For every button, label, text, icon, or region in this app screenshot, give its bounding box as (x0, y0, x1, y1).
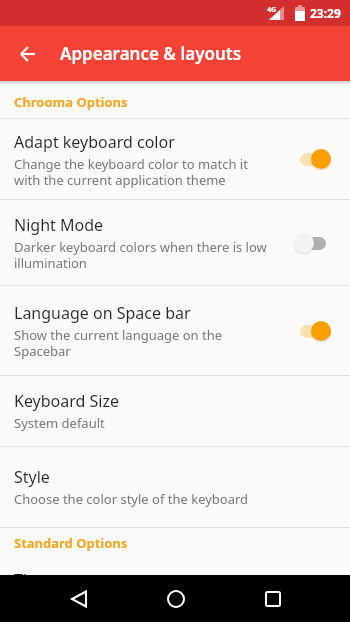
staticText: Change the keyboard color to match it wi… (14, 155, 248, 188)
staticText: Keyboard Size (14, 390, 120, 412)
button[interactable]: Style (0, 447, 350, 527)
button[interactable] (13, 39, 43, 69)
staticText: Appearance & layouts (60, 42, 242, 65)
staticText: Themes (14, 569, 74, 575)
staticText: System default (14, 414, 105, 432)
button[interactable]: Adapt keyboard color (0, 119, 350, 199)
button[interactable] (224, 575, 321, 622)
staticText: Style (14, 466, 50, 488)
staticText: Show the current language on the Spaceba… (14, 326, 223, 359)
button[interactable] (30, 575, 127, 622)
staticText: 23:29 (310, 5, 341, 21)
button[interactable] (293, 148, 332, 170)
staticText: Adapt keyboard color (14, 131, 175, 153)
button[interactable]: Language on Space bar (0, 286, 350, 375)
staticText: Night Mode (14, 214, 104, 236)
button[interactable] (127, 575, 224, 622)
staticText: Choose the color style of the keyboard (14, 490, 249, 508)
button[interactable]: Night Mode (0, 200, 350, 285)
staticText: Standard Options (14, 534, 128, 552)
button[interactable] (293, 320, 332, 342)
staticText: Darker keyboard colors when there is low… (14, 238, 267, 271)
staticText: Chrooma Options (14, 93, 128, 111)
staticText: 4G (267, 5, 277, 15)
staticText: Language on Space bar (14, 302, 191, 324)
button[interactable] (293, 232, 332, 254)
button[interactable]: Keyboard Size (0, 376, 350, 446)
